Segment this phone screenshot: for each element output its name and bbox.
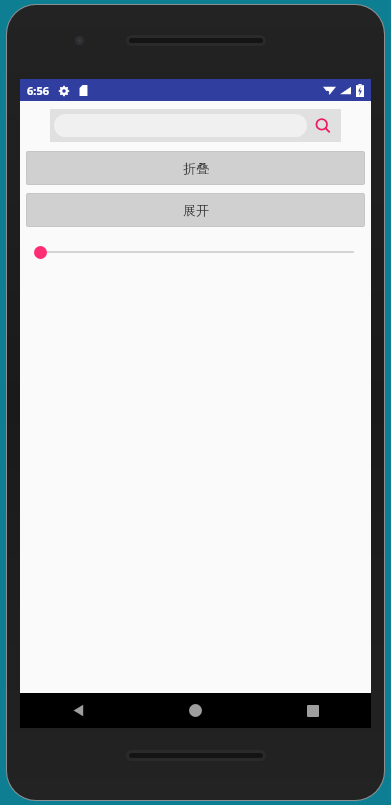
staticText: 展开 — [183, 202, 209, 218]
button[interactable]: Recent apps — [254, 693, 371, 728]
button[interactable]: Search — [312, 115, 334, 137]
button[interactable]: Search — [50, 109, 341, 142]
button[interactable]: Back — [20, 693, 137, 728]
button[interactable]: Home — [137, 693, 254, 728]
button[interactable]: 折叠 — [26, 151, 365, 185]
button[interactable]: 展开 — [26, 193, 365, 227]
button[interactable] — [32, 240, 359, 264]
staticText: 折叠 — [183, 160, 209, 176]
staticText: 6:56 — [27, 83, 49, 98]
